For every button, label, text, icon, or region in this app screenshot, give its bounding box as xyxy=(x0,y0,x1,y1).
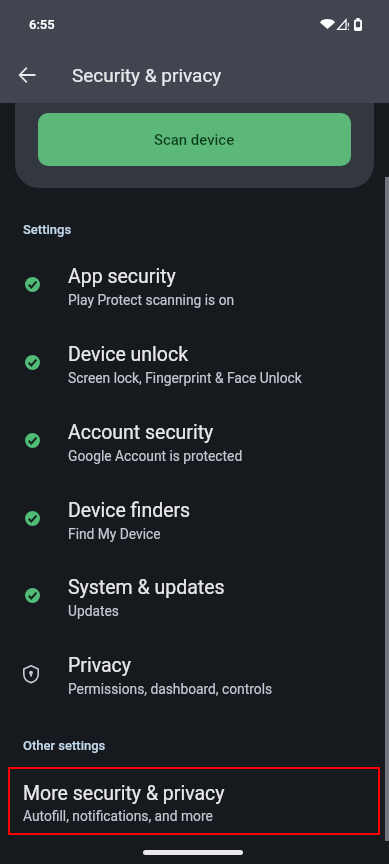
button[interactable]: Account security xyxy=(0,408,389,478)
staticText: Play Protect scanning is on xyxy=(68,292,235,308)
staticText: Autofill, notifications, and more xyxy=(23,808,213,824)
staticText: Google Account is protected xyxy=(68,448,243,464)
staticText: Security & privacy xyxy=(72,64,222,86)
button[interactable]: Device finders xyxy=(0,486,389,556)
staticText: Find My Device xyxy=(68,526,161,542)
button[interactable]: More security & privacy xyxy=(8,767,380,835)
staticText: Device unlock xyxy=(68,343,189,366)
staticText: 6:55 xyxy=(29,17,55,32)
button[interactable]: App security xyxy=(0,252,389,322)
staticText: Other settings xyxy=(23,738,106,753)
staticText: System & updates xyxy=(68,576,225,599)
staticText: Device finders xyxy=(68,499,191,522)
staticText: Updates xyxy=(68,603,119,619)
button[interactable]: System & updates xyxy=(0,563,389,633)
staticText: Scan device xyxy=(154,131,235,148)
staticText: Screen lock, Fingerprint & Face Unlock xyxy=(68,370,302,386)
button[interactable]: Privacy xyxy=(0,641,389,711)
staticText: Settings xyxy=(23,222,72,237)
button[interactable]: Back xyxy=(3,51,51,99)
staticText: More security & privacy xyxy=(23,782,225,805)
staticText: Privacy xyxy=(68,654,131,677)
button[interactable]: Device unlock xyxy=(0,330,389,400)
button[interactable]: Scan device xyxy=(38,113,351,166)
staticText: App security xyxy=(68,265,176,288)
staticText: Account security xyxy=(68,421,214,444)
staticText: Permissions, dashboard, controls xyxy=(68,681,273,697)
